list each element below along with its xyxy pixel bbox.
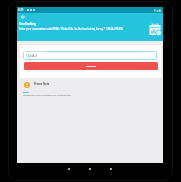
button[interactable]: 1234A-X — [23, 51, 157, 60]
staticText: PROCEED — [86, 65, 96, 68]
button[interactable]: Home — [85, 164, 95, 174]
button[interactable]: PROCEED — [24, 62, 158, 70]
staticText: Please Note — [34, 82, 50, 86]
staticText: New Booking — [19, 22, 36, 25]
staticText: 5:20 — [18, 8, 24, 12]
staticText: RESERVATION CODE — [26, 50, 42, 52]
button[interactable]: Back — [64, 164, 74, 174]
button[interactable]: My bookings — [149, 23, 161, 36]
staticText: Modification will be allowed only once p… — [23, 94, 72, 97]
button[interactable]: Back — [18, 12, 27, 21]
button[interactable]: Recent apps — [106, 164, 116, 174]
staticText: Enter your reservation code(PNR) / (Tick… — [19, 27, 123, 30]
staticText: 1234A-X — [26, 54, 38, 58]
